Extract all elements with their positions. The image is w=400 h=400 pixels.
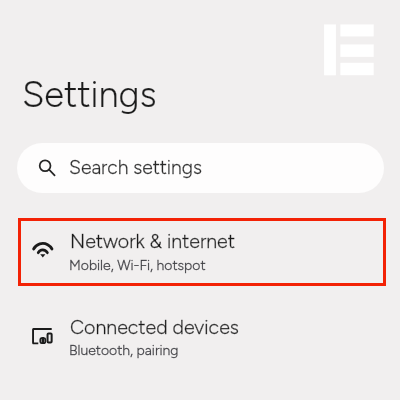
staticText: Search settings bbox=[69, 156, 203, 179]
staticText: Network & internet bbox=[70, 229, 235, 253]
staticText: Network & internet bbox=[70, 229, 235, 253]
staticText: Settings bbox=[22, 73, 157, 116]
staticText: Search settings bbox=[69, 156, 203, 179]
staticText: Connected devices bbox=[70, 315, 239, 339]
button[interactable]: Network & internet bbox=[18, 218, 386, 286]
button[interactable]: Change layout bbox=[318, 18, 386, 86]
staticText: Mobile, Wi-Fi, hotspot bbox=[69, 257, 206, 274]
staticText: Bluetooth, pairing bbox=[69, 342, 179, 359]
staticText: Settings bbox=[22, 73, 157, 116]
button[interactable]: Connected devices bbox=[18, 303, 385, 372]
button[interactable]: Search settings bbox=[17, 143, 384, 193]
staticText: Bluetooth, pairing bbox=[69, 342, 179, 359]
staticText: Mobile, Wi-Fi, hotspot bbox=[69, 257, 206, 274]
staticText: Connected devices bbox=[70, 315, 239, 339]
